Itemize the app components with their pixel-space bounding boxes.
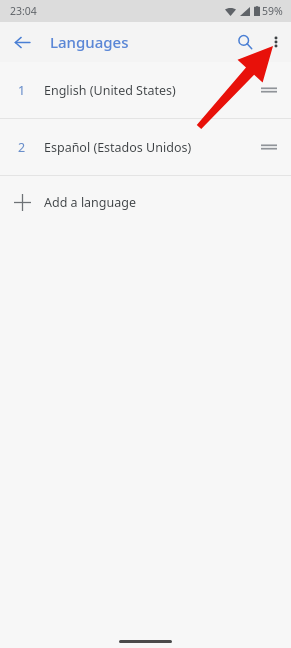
staticText: 59% xyxy=(262,4,283,18)
staticText: Add a language xyxy=(44,194,137,211)
staticText: Languages xyxy=(50,32,129,52)
button[interactable]: Reorder xyxy=(247,125,291,169)
button[interactable]: 1 xyxy=(0,62,291,118)
button[interactable]: Add a language xyxy=(0,176,291,228)
button[interactable]: 2 xyxy=(0,119,291,175)
staticText: 2 xyxy=(18,139,26,156)
button[interactable]: More options xyxy=(261,27,291,57)
staticText: 1 xyxy=(18,82,26,99)
staticText: Español (Estados Unidos) xyxy=(44,139,247,156)
button[interactable]: Search xyxy=(229,26,261,58)
staticText: English (United States) xyxy=(44,82,247,99)
button[interactable]: Back xyxy=(8,28,36,56)
staticText: 23:04 xyxy=(10,4,37,18)
button[interactable]: Reorder xyxy=(247,68,291,112)
